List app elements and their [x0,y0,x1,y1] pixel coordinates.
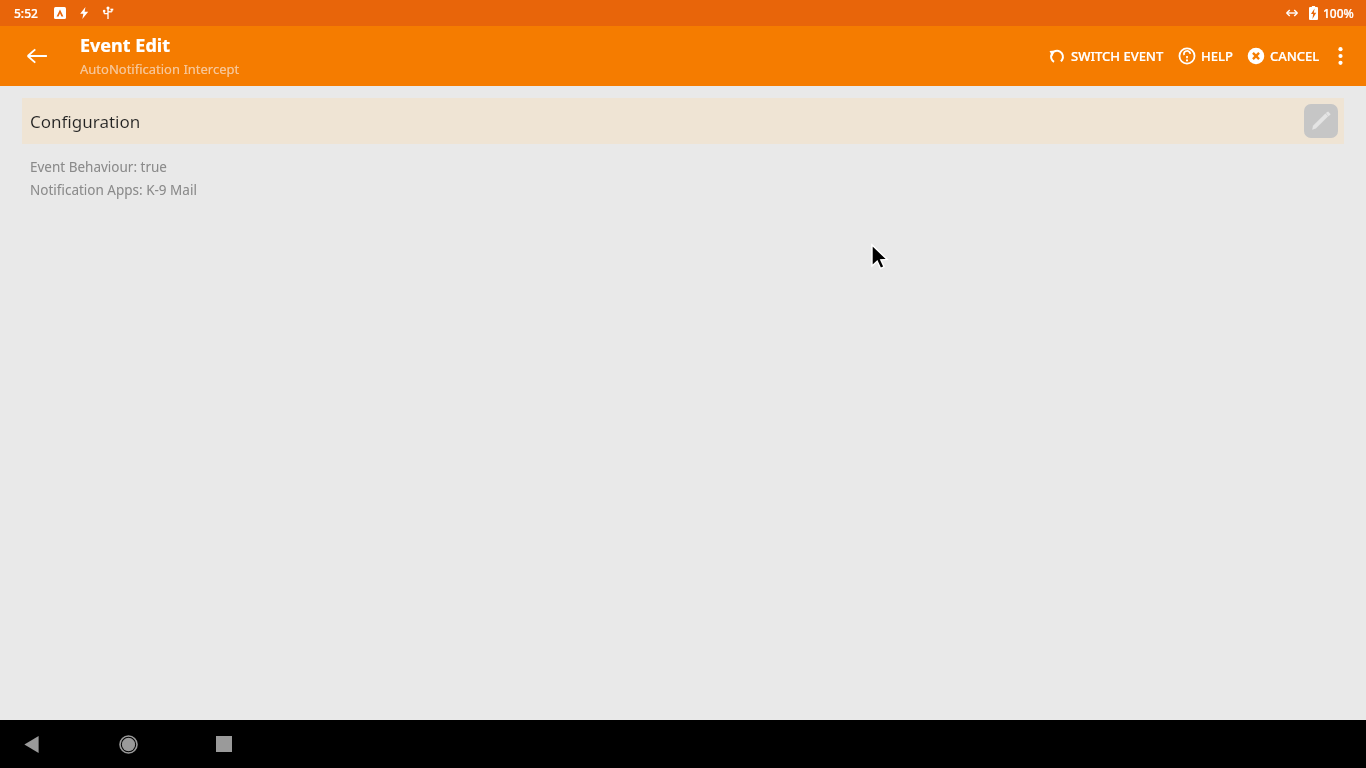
staticText: Event Behaviour: true [30,158,167,176]
button[interactable]: Configuration [22,98,1344,144]
staticText: SWITCH EVENT [1071,47,1164,65]
button[interactable]: Back [10,723,52,765]
staticText: 5:52 [14,5,38,21]
button[interactable]: HELP [1176,41,1235,71]
button[interactable]: Edit configuration [1304,104,1338,138]
button[interactable]: CANCEL [1245,41,1322,71]
button[interactable]: Back [16,35,58,77]
staticText: HELP [1201,47,1233,65]
staticText: AutoNotification Intercept [80,60,240,78]
button[interactable]: SWITCH EVENT [1046,41,1166,71]
staticText: Notification Apps: K-9 Mail [30,181,197,199]
button[interactable]: Recent apps [203,723,245,765]
button[interactable]: More options [1322,34,1358,78]
staticText: 100% [1323,5,1354,21]
staticText: CANCEL [1270,47,1320,65]
staticText: Configuration [30,110,141,133]
button[interactable]: Home [107,723,149,765]
staticText: Event Edit [80,33,170,58]
